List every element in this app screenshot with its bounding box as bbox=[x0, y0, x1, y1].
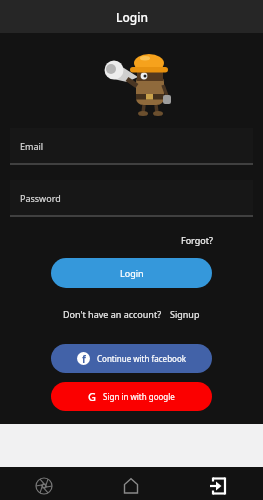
button[interactable] bbox=[175, 472, 263, 500]
staticText: f bbox=[82, 352, 86, 365]
staticText: Email bbox=[20, 140, 44, 152]
button[interactable] bbox=[0, 472, 87, 500]
staticText: Sign in with google bbox=[103, 391, 175, 402]
button[interactable]: f bbox=[51, 344, 212, 373]
staticText: Forgot? bbox=[181, 234, 213, 246]
button[interactable]: Email bbox=[10, 128, 253, 163]
button[interactable]: Login bbox=[51, 258, 212, 288]
staticText: Don't have an account? bbox=[63, 308, 162, 320]
button[interactable]: Forgot? bbox=[181, 234, 213, 246]
staticText: Login bbox=[116, 9, 148, 25]
button[interactable] bbox=[87, 472, 175, 500]
staticText: G bbox=[88, 389, 96, 404]
staticText: Continue with facebook bbox=[97, 353, 186, 364]
button[interactable]: Signup bbox=[170, 308, 200, 320]
button[interactable]: Password bbox=[10, 180, 253, 215]
staticText: Signup bbox=[170, 308, 200, 320]
staticText: Login bbox=[120, 267, 144, 279]
button[interactable]: G bbox=[51, 382, 212, 411]
staticText: Password bbox=[20, 192, 61, 204]
